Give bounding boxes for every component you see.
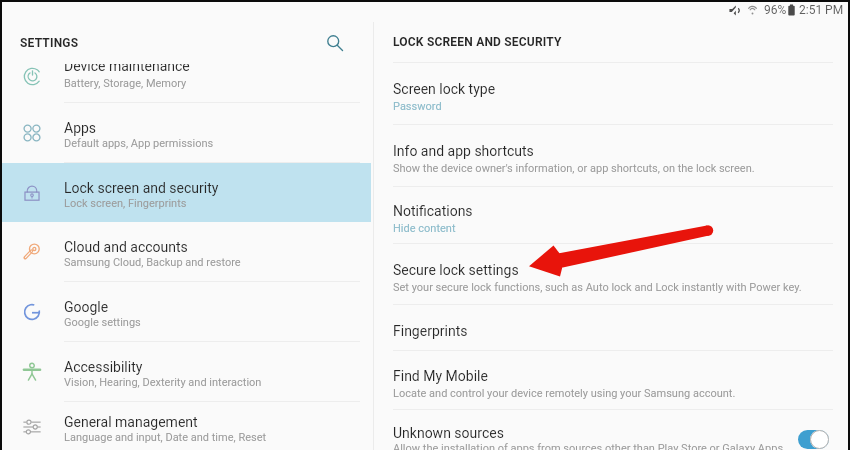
button[interactable]: Info and app shortcuts — [372, 125, 850, 186]
staticText: Locate and control your device remotely … — [393, 387, 736, 400]
button[interactable]: Accessibility — [0, 342, 371, 401]
button[interactable]: Google — [0, 282, 371, 341]
staticText: Samsung Cloud, Backup and restore — [64, 256, 241, 269]
button[interactable]: Cloud and accounts — [0, 222, 371, 281]
button[interactable]: Screen lock type — [372, 63, 850, 124]
button[interactable]: Search — [321, 29, 349, 57]
staticText: SETTINGS — [20, 36, 79, 50]
button[interactable]: Find My Mobile — [372, 351, 850, 409]
button[interactable]: Lock screen and security — [0, 163, 371, 222]
button[interactable]: Apps — [0, 103, 371, 162]
staticText: Google — [64, 299, 109, 315]
button[interactable]: Unknown sources — [372, 410, 850, 450]
staticText: Password — [393, 100, 442, 113]
staticText: Allow the installation of apps from sour… — [393, 442, 786, 450]
button[interactable]: Device maintenance — [0, 43, 371, 102]
staticText: Apps — [64, 120, 97, 136]
button[interactable]: General management — [0, 402, 371, 450]
staticText: Info and app shortcuts — [393, 143, 534, 159]
staticText: LOCK SCREEN AND SECURITY — [393, 35, 562, 49]
staticText: Battery, Storage, Memory — [64, 77, 187, 90]
staticText: Screen lock type — [393, 81, 496, 97]
staticText: Set your secure lock functions, such as … — [393, 281, 802, 294]
staticText: 96% — [764, 3, 787, 17]
button[interactable]: Secure lock settings — [372, 244, 850, 304]
staticText: Device maintenance — [64, 58, 190, 74]
staticText: Hide content — [393, 222, 456, 235]
staticText: Cloud and accounts — [64, 239, 188, 255]
staticText: 2:51 PM — [799, 3, 844, 17]
staticText: Default apps, App permissions — [64, 137, 214, 150]
staticText: Fingerprints — [393, 323, 468, 339]
button[interactable]: Fingerprints — [372, 305, 850, 350]
staticText: Language and input, Date and time, Reset — [64, 431, 267, 444]
staticText: Notifications — [393, 203, 473, 219]
staticText: Find My Mobile — [393, 368, 488, 384]
staticText: Secure lock settings — [393, 262, 519, 278]
staticText: General management — [64, 414, 198, 430]
staticText: Show the device owner's information, or … — [393, 162, 755, 175]
staticText: Unknown sources — [393, 425, 504, 441]
staticText: Google settings — [64, 316, 141, 329]
staticText: Lock screen and security — [64, 180, 219, 196]
button[interactable]: Unknown sources toggle — [798, 430, 829, 449]
button[interactable]: Notifications — [372, 187, 850, 243]
staticText: Lock screen, Fingerprints — [64, 197, 187, 210]
staticText: Vision, Hearing, Dexterity and interacti… — [64, 376, 262, 389]
staticText: Accessibility — [64, 359, 143, 375]
